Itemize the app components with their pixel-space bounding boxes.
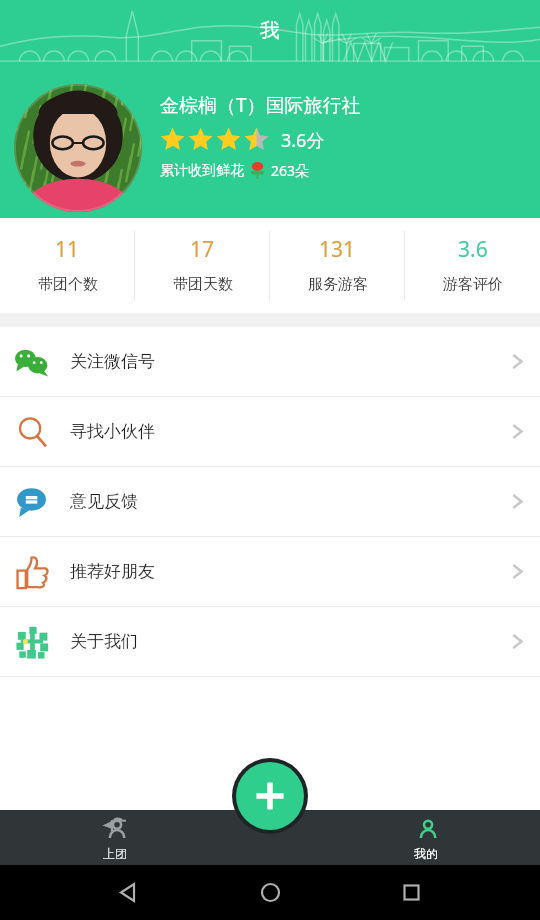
staticText: 寻找小伙伴: [70, 421, 155, 442]
staticText: 上团: [103, 846, 127, 861]
button[interactable]: 推荐好朋友: [0, 537, 540, 606]
staticText: 我: [260, 18, 280, 43]
button[interactable]: 上团: [0, 810, 229, 865]
button[interactable]: 11: [0, 218, 135, 313]
button[interactable]: 意见反馈: [0, 467, 540, 536]
staticText: 3.6: [458, 235, 488, 264]
other: Home: [258, 880, 283, 905]
button[interactable]: 关于我们: [0, 607, 540, 676]
staticText: 金棕榈（T）国际旅行社: [160, 92, 361, 118]
staticText: 131: [319, 235, 356, 264]
button[interactable]: 寻找小伙伴: [0, 397, 540, 466]
button[interactable]: 17: [135, 218, 270, 313]
other: Recents: [399, 880, 424, 905]
button[interactable]: 131: [270, 218, 405, 313]
button[interactable]: 关注微信号: [0, 327, 540, 396]
staticText: 游客评价: [443, 275, 503, 294]
staticText: 关于我们: [70, 631, 138, 652]
staticText: 意见反馈: [70, 491, 138, 512]
staticText: 263朵: [271, 161, 310, 180]
staticText: 带团个数: [38, 275, 98, 294]
button[interactable]: Add: [232, 758, 308, 834]
staticText: 关注微信号: [70, 351, 155, 372]
button[interactable]: 我的: [311, 810, 540, 865]
button[interactable]: 3.6: [405, 218, 540, 313]
staticText: 累计收到鲜花: [160, 162, 244, 180]
staticText: 17: [190, 235, 215, 264]
staticText: 带团天数: [173, 275, 233, 294]
staticText: 服务游客: [308, 275, 368, 294]
staticText: 我的: [414, 846, 438, 861]
staticText: 11: [55, 235, 80, 264]
staticText: 3.6分: [281, 128, 325, 153]
other: Back: [116, 880, 141, 905]
staticText: 推荐好朋友: [70, 561, 155, 582]
